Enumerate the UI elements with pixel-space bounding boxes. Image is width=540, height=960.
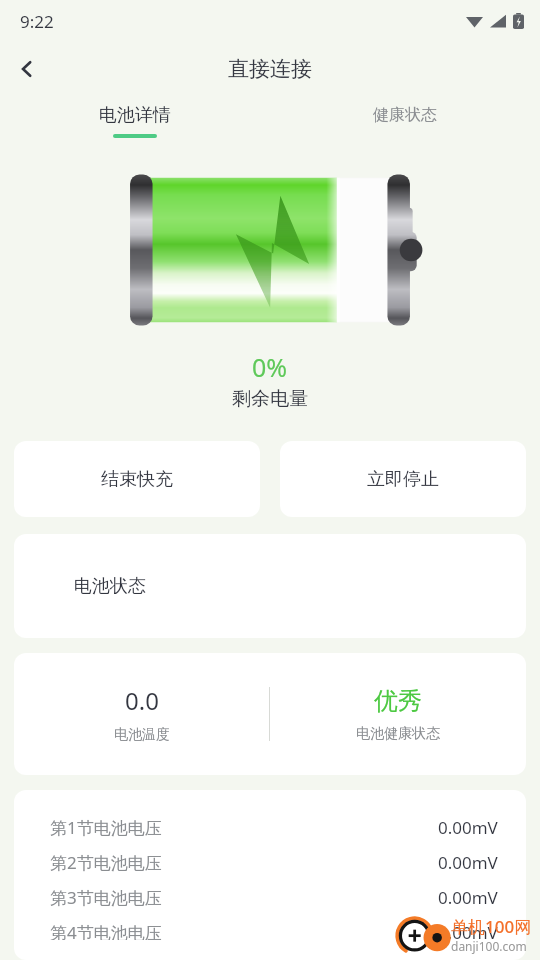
staticText: 单机100网 bbox=[451, 915, 532, 938]
staticText: 直接连接 bbox=[228, 56, 312, 82]
staticText: 0% bbox=[252, 350, 288, 384]
button[interactable]: 电池详情 bbox=[0, 96, 270, 152]
button[interactable]: Back bbox=[0, 42, 54, 96]
staticText: danji100.com bbox=[451, 938, 527, 954]
staticText: 第3节电池电压 bbox=[50, 886, 162, 909]
staticText: 0.0 bbox=[125, 684, 159, 717]
staticText: 第1节电池电压 bbox=[50, 816, 162, 839]
staticText: 结束快充 bbox=[101, 468, 173, 491]
staticText: 0.00mV bbox=[438, 816, 498, 839]
button[interactable]: 健康状态 bbox=[270, 96, 540, 152]
staticText: 剩余电量 bbox=[232, 387, 308, 411]
staticText: 第4节电池电压 bbox=[50, 921, 162, 940]
staticText: 优秀 bbox=[374, 686, 422, 716]
button[interactable]: 电池状态 bbox=[14, 534, 526, 638]
staticText: 健康状态 bbox=[373, 105, 437, 125]
staticText: 电池详情 bbox=[99, 104, 171, 127]
button[interactable]: 立即停止 bbox=[280, 441, 526, 517]
staticText: 0.00mV bbox=[438, 851, 498, 874]
staticText: 电池温度 bbox=[114, 726, 170, 744]
staticText: 第2节电池电压 bbox=[50, 851, 162, 874]
staticText: 0.00mV bbox=[438, 921, 498, 940]
staticText: 0.00mV bbox=[438, 886, 498, 909]
staticText: 电池状态 bbox=[74, 575, 146, 598]
staticText: 立即停止 bbox=[367, 468, 439, 491]
staticText: 9:22 bbox=[20, 10, 54, 33]
staticText: 电池健康状态 bbox=[356, 725, 440, 743]
button[interactable]: 结束快充 bbox=[14, 441, 260, 517]
